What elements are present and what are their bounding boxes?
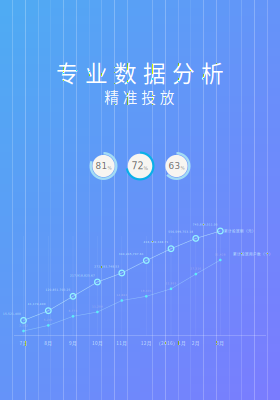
staticText: 8,773 (68, 309, 77, 312)
staticText: % (143, 165, 148, 171)
staticText: 5,241 (44, 318, 53, 321)
staticText: 2月 (192, 340, 200, 346)
staticText: 8月 (44, 340, 52, 346)
staticText: 10月 (92, 340, 103, 346)
staticText: 精准投放 (104, 86, 175, 107)
staticText: 累计投放用户数（个） (233, 251, 273, 257)
staticText: 556,599,753.18 (168, 230, 193, 233)
staticText: 120,851,703.25 (45, 288, 70, 291)
staticText: 专业数据分析 (56, 56, 224, 88)
staticText: 18,401 (141, 289, 152, 292)
staticText: 81 (95, 161, 107, 171)
staticText: 416,649,348.71 (143, 241, 168, 244)
staticText: 7月 (19, 340, 27, 346)
staticText: 9月 (69, 340, 77, 346)
staticText: 41,174,400 (28, 303, 46, 306)
staticText: 272,183,748.53 (94, 265, 119, 268)
staticText: 3月 (216, 340, 224, 346)
staticText: 15,521,400 (3, 312, 21, 315)
staticText: 12月 (141, 340, 152, 346)
staticText: 11月 (116, 340, 127, 346)
staticText: 31,428 (215, 253, 226, 256)
staticText: （2016）1月 (156, 340, 186, 346)
staticText: 14,862 (116, 293, 127, 296)
staticText: 745,856,511.05 (193, 223, 218, 226)
staticText: 11,204 (92, 305, 103, 308)
staticText: 344,245,797.61 (119, 252, 144, 255)
staticText: 27,310 (190, 267, 201, 270)
staticText: 3,102 (19, 324, 28, 327)
staticText: % (180, 165, 184, 171)
staticText: 累计投放额（元） (224, 228, 256, 234)
staticText: 63 (168, 161, 180, 171)
staticText: % (107, 165, 111, 171)
staticText: 22,955 (165, 282, 176, 285)
staticText: 72 (131, 160, 143, 172)
staticText: 217,918,825.67 (70, 274, 95, 277)
